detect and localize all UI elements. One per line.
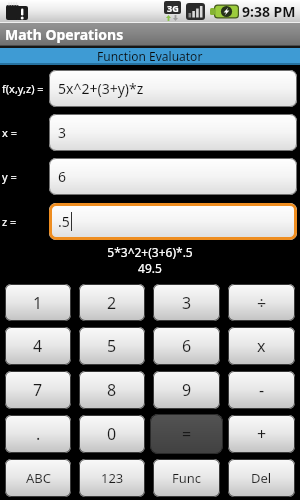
button[interactable]: + — [228, 415, 295, 453]
staticText: = — [182, 423, 192, 445]
staticText: 0 — [107, 423, 117, 445]
button[interactable]: 5x^2+(3+y)*z — [49, 70, 297, 107]
staticText: 5x^2+(3+y)*z — [58, 79, 144, 98]
staticText: 8 — [107, 379, 117, 401]
button[interactable]: 6 — [153, 327, 220, 365]
button[interactable]: ÷ — [228, 284, 295, 321]
staticText: Func — [172, 469, 202, 487]
staticText: 7 — [33, 379, 43, 401]
staticText: 4 — [33, 335, 43, 357]
button[interactable]: 7 — [5, 371, 71, 409]
button[interactable]: Func — [153, 459, 220, 497]
button[interactable]: .5 — [49, 203, 297, 240]
staticText: 5*3^2+(3+6)*.5 — [0, 244, 300, 260]
staticText: .5 — [58, 212, 70, 231]
button[interactable]: = — [150, 414, 223, 454]
button[interactable]: 3 — [49, 114, 297, 151]
staticText: . — [36, 423, 41, 445]
staticText: ABC — [26, 469, 51, 487]
staticText: y = — [2, 169, 17, 184]
staticText: 3 — [58, 123, 67, 142]
staticText: 6 — [58, 167, 67, 186]
staticText: x — [257, 335, 266, 357]
staticText: 123 — [101, 469, 124, 487]
staticText: - — [259, 379, 265, 401]
button[interactable]: x — [228, 327, 295, 365]
button[interactable]: . — [5, 415, 71, 453]
staticText: 3G — [167, 2, 179, 14]
button[interactable]: 5 — [79, 327, 145, 365]
staticText: 9 — [182, 379, 192, 401]
button[interactable]: 1 — [5, 284, 71, 321]
button[interactable]: 123 — [79, 459, 145, 497]
staticText: 2 — [107, 292, 117, 314]
button[interactable]: ABC — [5, 459, 71, 497]
staticText: Function Evaluator — [97, 48, 203, 64]
button[interactable]: 0 — [79, 415, 145, 453]
staticText: + — [257, 423, 267, 445]
staticText: Math Operations — [5, 25, 124, 44]
staticText: x = — [2, 125, 17, 140]
button[interactable]: - — [228, 371, 295, 409]
button[interactable]: 6 — [49, 158, 297, 195]
staticText: 5 — [107, 335, 117, 357]
staticText: 6 — [182, 335, 192, 357]
button[interactable]: 8 — [79, 371, 145, 409]
staticText: z = — [2, 214, 17, 229]
button[interactable]: 3 — [153, 284, 220, 321]
staticText: 3 — [182, 292, 192, 314]
staticText: 1 — [33, 292, 43, 314]
staticText: Del — [251, 469, 272, 487]
button[interactable]: 2 — [79, 284, 145, 321]
staticText: 9:38 PM — [242, 2, 296, 21]
staticText: ÷ — [257, 292, 267, 314]
staticText: 49.5 — [0, 260, 300, 276]
button[interactable]: Del — [228, 459, 295, 497]
button[interactable]: 4 — [5, 327, 71, 365]
button[interactable]: 9 — [153, 371, 220, 409]
staticText: f(x,y,z) = — [2, 81, 44, 96]
